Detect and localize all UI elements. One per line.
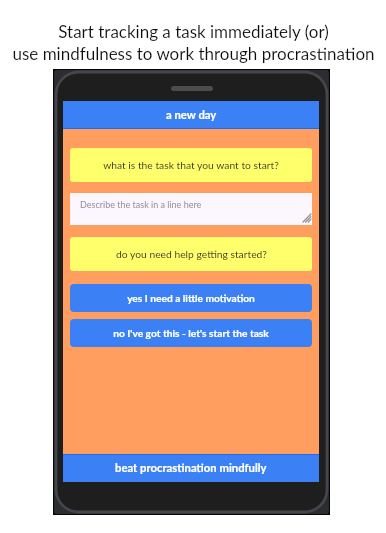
staticText: beat procrastination mindfully [115,461,267,475]
staticText: a new day [166,108,217,122]
button[interactable]: beat procrastination mindfully [63,454,319,482]
staticText: what is the task that you want to start? [103,159,279,171]
staticText: do you need help getting started? [116,248,267,260]
staticText: yes I need a little motivation [127,292,255,304]
button[interactable]: no I've got this - let's start the task [70,319,312,347]
staticText: Describe the task in a line here [80,199,202,210]
staticText: Start tracking a task immediately (or) [58,21,329,41]
staticText: no I've got this - let's start the task [113,327,269,339]
staticText: use mindfulness to work through procrast… [12,43,375,63]
button[interactable]: Describe the task in a line here [70,193,312,225]
button[interactable]: a new day [63,101,319,129]
button[interactable]: yes I need a little motivation [70,284,312,312]
